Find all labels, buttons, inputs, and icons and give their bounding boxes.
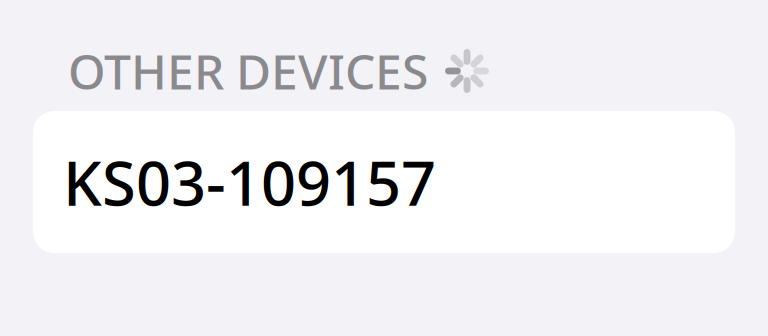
button[interactable]: KS03-109157 (33, 111, 735, 253)
staticText: KS03-109157 (63, 141, 436, 223)
staticText: OTHER DEVICES (68, 39, 428, 103)
